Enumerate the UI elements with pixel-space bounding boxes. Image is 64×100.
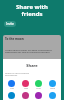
staticText: Share with friends [0,3,64,18]
button[interactable]: Twitter [47,92,58,100]
staticText: Chat [36,87,41,90]
staticText: Link [10,87,14,90]
staticText: Share [3,63,61,68]
staticText: Send to your friends and family [5,71,29,77]
button[interactable]: Invite [4,21,16,27]
button[interactable]: Telegram [6,92,17,100]
button[interactable]: Viber [33,92,44,100]
button[interactable]: Copy link [6,80,17,90]
button[interactable]: More [47,80,58,90]
button[interactable]: Chat [33,80,44,90]
button[interactable]: Mail [20,80,31,90]
staticText: Lorem ipsum dolor sit amet consectetur a… [5,48,61,54]
button[interactable]: Instagram [20,92,31,100]
staticText: Mail [24,87,28,90]
staticText: More [50,87,55,90]
staticText: Invite [6,22,14,26]
staticText: To the moon [5,37,24,41]
